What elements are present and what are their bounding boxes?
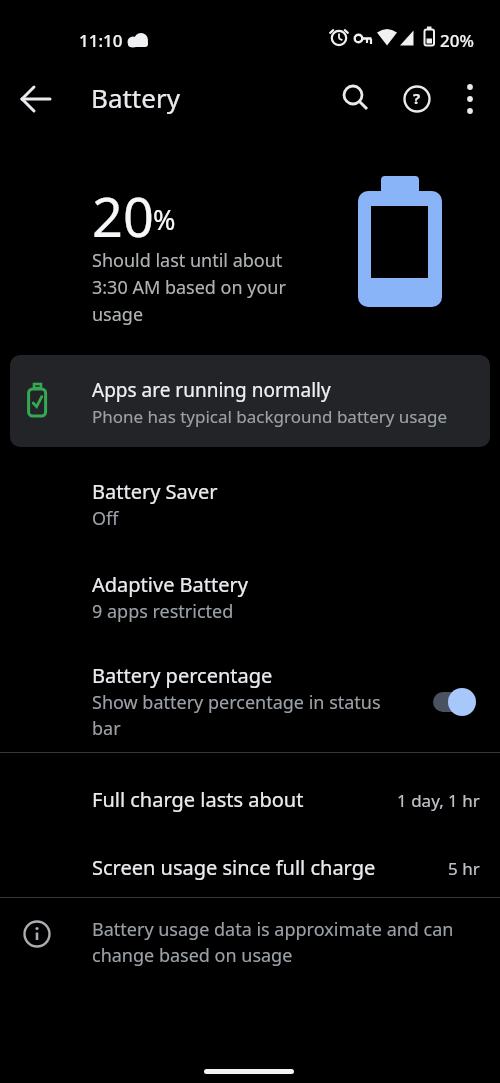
staticText: Off bbox=[92, 506, 119, 531]
button[interactable] bbox=[332, 75, 380, 123]
staticText: Apps are running normally bbox=[92, 377, 331, 403]
button[interactable] bbox=[446, 75, 494, 123]
staticText: 1 day, 1 hr bbox=[397, 789, 480, 812]
staticText: Battery usage data is approximate and ca… bbox=[92, 917, 454, 967]
staticText: 9 apps restricted bbox=[92, 599, 234, 624]
button[interactable]: Full charge lasts about bbox=[0, 766, 500, 836]
button[interactable]: Adaptive Battery bbox=[0, 559, 500, 649]
staticText: Battery Saver bbox=[92, 478, 218, 505]
staticText: ? bbox=[413, 88, 421, 108]
staticText: Screen usage since full charge bbox=[92, 854, 376, 881]
staticText: Full charge lasts about bbox=[92, 786, 304, 813]
staticText: 5 hr bbox=[448, 857, 480, 880]
button[interactable]: Battery percentage bbox=[0, 652, 500, 752]
button[interactable]: Battery Saver bbox=[0, 466, 500, 556]
staticText: Adaptive Battery bbox=[92, 571, 249, 598]
staticText: Show battery percentage in status bar bbox=[92, 690, 381, 741]
staticText: 11:10 bbox=[79, 29, 123, 52]
staticText: Should last until about 3:30 AM based on… bbox=[92, 248, 286, 326]
staticText: Battery bbox=[91, 80, 180, 115]
button[interactable]: Screen usage since full charge bbox=[0, 836, 500, 896]
staticText: % bbox=[153, 201, 176, 238]
button[interactable]: Apps are running normally bbox=[10, 355, 490, 447]
button[interactable]: ? bbox=[393, 75, 441, 123]
staticText: 20% bbox=[440, 29, 474, 52]
staticText: 20 bbox=[92, 179, 154, 253]
staticText: Phone has typical background battery usa… bbox=[92, 405, 448, 428]
button[interactable] bbox=[12, 75, 60, 123]
staticText: Battery percentage bbox=[92, 662, 273, 689]
